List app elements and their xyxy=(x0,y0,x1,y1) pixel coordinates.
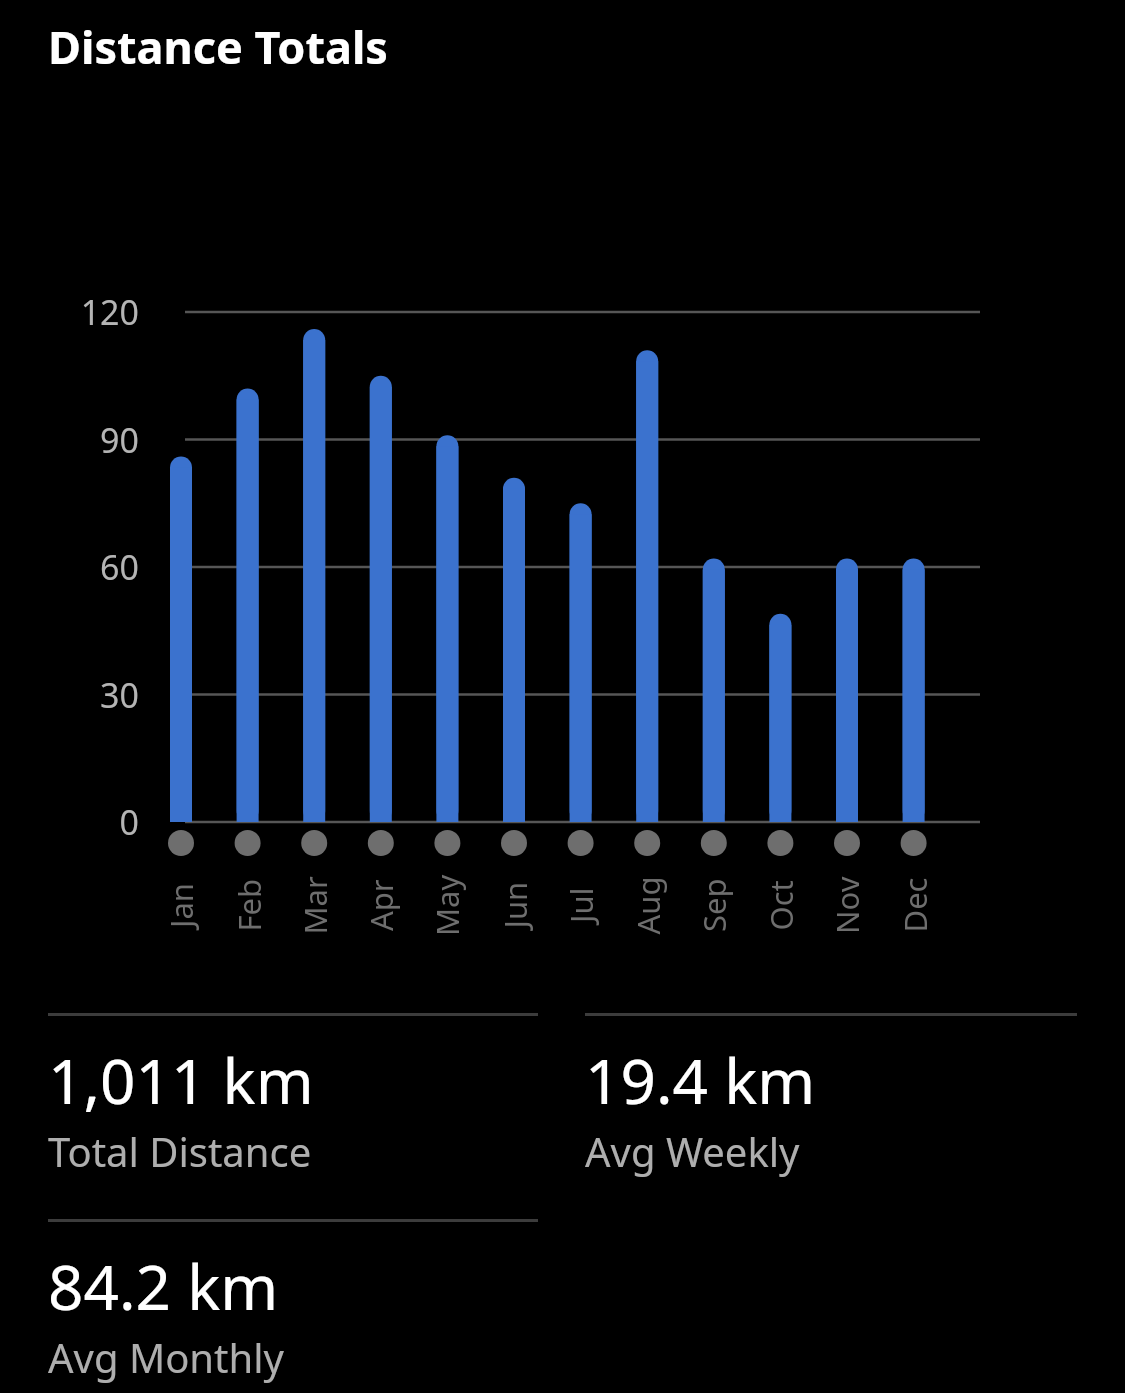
button[interactable]: 84.2 km xyxy=(48,1219,538,1384)
staticText: Oct xyxy=(759,879,801,930)
staticText: 19.4 km xyxy=(585,1038,816,1122)
staticText: Mar xyxy=(293,875,335,934)
staticText: 0 xyxy=(19,799,139,845)
staticText: Apr xyxy=(360,879,402,931)
staticText: Avg Weekly xyxy=(585,1124,800,1178)
staticText: Total Distance xyxy=(48,1124,312,1178)
button[interactable]: 19.4 km xyxy=(585,1013,1077,1178)
staticText: 60 xyxy=(19,544,139,590)
staticText: May xyxy=(426,874,468,936)
staticText: 84.2 km xyxy=(48,1244,279,1328)
staticText: Dec xyxy=(893,877,935,932)
button[interactable]: 1,011 km xyxy=(48,1013,538,1178)
staticText: Jan xyxy=(160,882,202,928)
staticText: Nov xyxy=(826,876,868,934)
staticText: Jun xyxy=(493,881,535,928)
staticText: Aug xyxy=(626,875,668,934)
staticText: 30 xyxy=(19,672,139,718)
staticText: 90 xyxy=(19,417,139,463)
staticText: 120 xyxy=(19,289,139,335)
staticText: 1,011 km xyxy=(48,1038,314,1122)
staticText: Sep xyxy=(693,878,735,932)
staticText: Jul xyxy=(560,887,602,923)
staticText: Avg Monthly xyxy=(48,1330,284,1384)
staticText: Distance Totals xyxy=(48,16,388,77)
staticText: Feb xyxy=(227,878,269,931)
other: Monthly distance bar chart xyxy=(0,0,1125,1393)
